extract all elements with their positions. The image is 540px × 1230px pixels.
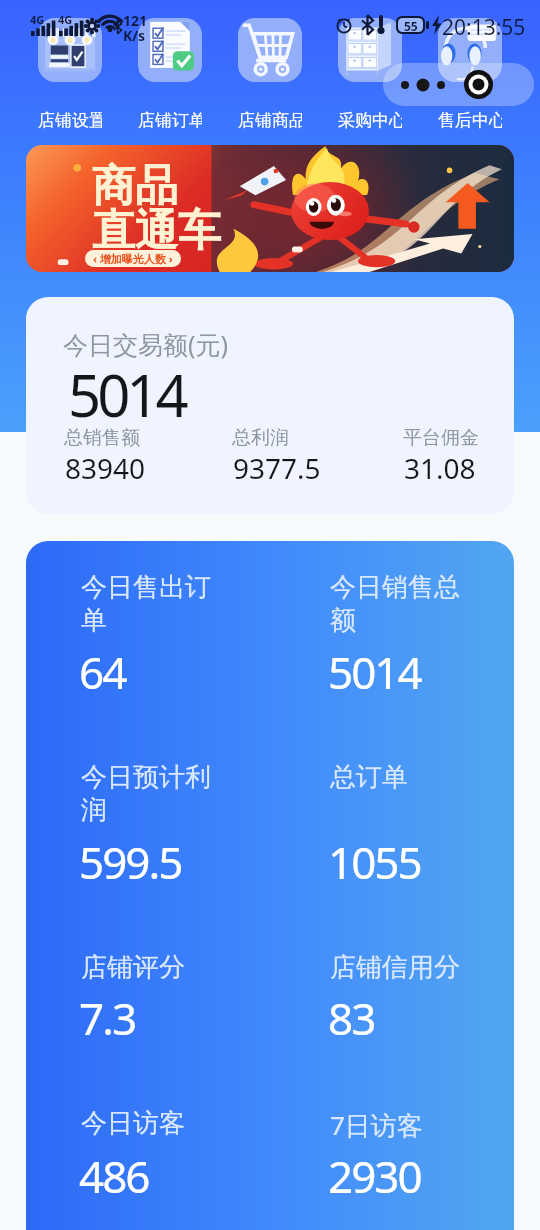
staticText: 店铺评分	[81, 951, 185, 984]
staticText: 2930	[328, 1146, 421, 1206]
button[interactable]: Recording controls	[383, 63, 534, 106]
button[interactable]: 售后中心	[438, 18, 502, 131]
button[interactable]: 店铺信用分	[330, 951, 480, 984]
button[interactable]: 总订单	[330, 761, 480, 794]
staticText: 总利润	[232, 426, 289, 450]
button[interactable]: 今日售出订单	[81, 571, 231, 636]
staticText: 店铺商品	[238, 110, 302, 131]
staticText: 直通车	[92, 204, 221, 258]
staticText: 1055	[328, 832, 421, 892]
staticText: 4G	[58, 12, 73, 27]
button[interactable]: 店铺商品	[238, 18, 302, 131]
staticText: 今日销售总额	[330, 571, 480, 636]
staticText: 9377.5	[233, 449, 321, 487]
staticText: 今日售出订单	[81, 571, 231, 636]
staticText: 总订单	[330, 761, 408, 794]
staticText: 售后中心	[438, 110, 502, 131]
button[interactable]: 今日交易额(元)	[26, 297, 514, 514]
staticText: 5014	[68, 355, 185, 434]
staticText: 83940	[65, 449, 146, 487]
staticText: 486	[79, 1146, 149, 1206]
button[interactable]: 店铺设置	[38, 18, 102, 131]
button[interactable]: 今日销售总额	[330, 571, 480, 636]
staticText: 店铺设置	[38, 110, 102, 131]
staticText: 店铺信用分	[330, 951, 460, 984]
staticText: 采购中心	[338, 110, 402, 131]
staticText: 20:13:55	[442, 13, 526, 42]
staticText: 599.5	[79, 832, 182, 892]
staticText: 5014	[328, 642, 421, 702]
staticText: 64	[79, 642, 126, 702]
button[interactable]: 今日预计利润	[81, 761, 231, 826]
staticText: 121 K/s	[123, 11, 148, 45]
staticText: 7.3	[79, 988, 136, 1048]
staticText: 今日预计利润	[81, 761, 231, 826]
button[interactable]: 店铺评分	[81, 951, 231, 984]
staticText: 店铺订单	[138, 110, 202, 131]
staticText: 今日交易额(元)	[63, 327, 229, 361]
button[interactable]: 店铺订单	[138, 18, 202, 131]
button[interactable]: 采购中心	[338, 18, 402, 131]
staticText: 55	[404, 18, 418, 32]
staticText: 商品	[92, 159, 178, 213]
button[interactable]: 7日访客	[330, 1107, 480, 1143]
staticText: 平台佣金	[403, 426, 479, 450]
staticText: 4G	[30, 12, 45, 27]
button[interactable]: 商品	[26, 145, 514, 272]
staticText: 7日访客	[330, 1107, 423, 1143]
staticText: 总销售额	[64, 426, 140, 450]
staticText: 31.08	[404, 449, 476, 487]
staticText: ‹ 增加曝光人数 ›	[93, 251, 173, 266]
button[interactable]: 今日访客	[81, 1107, 231, 1140]
staticText: 今日访客	[81, 1107, 185, 1140]
staticText: 83	[328, 988, 375, 1048]
